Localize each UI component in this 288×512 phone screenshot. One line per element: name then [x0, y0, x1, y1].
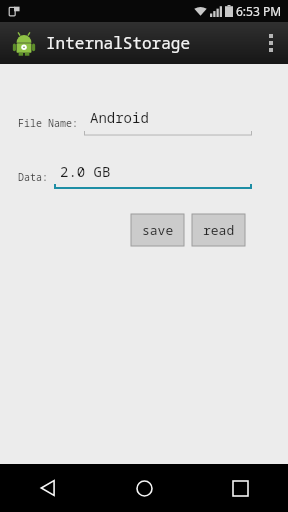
staticText: 2.0 GB [60, 162, 111, 181]
button[interactable]: 2.0 GB [54, 162, 252, 190]
button[interactable]: save [131, 214, 184, 246]
staticText: save [142, 221, 174, 239]
staticText: 6:53 PM [236, 3, 282, 19]
button[interactable]: read [192, 214, 245, 246]
staticText: Android [90, 108, 149, 127]
button[interactable]: Android [84, 108, 252, 136]
staticText: read [203, 221, 235, 239]
button[interactable]: Back [0, 464, 96, 512]
staticText: File Name: [18, 116, 78, 130]
button[interactable]: Recent apps [192, 464, 288, 512]
button[interactable]: Home [96, 464, 192, 512]
button[interactable]: More options [254, 22, 288, 64]
staticText: InternalStorage [46, 32, 191, 54]
staticText: Data: [18, 170, 48, 184]
